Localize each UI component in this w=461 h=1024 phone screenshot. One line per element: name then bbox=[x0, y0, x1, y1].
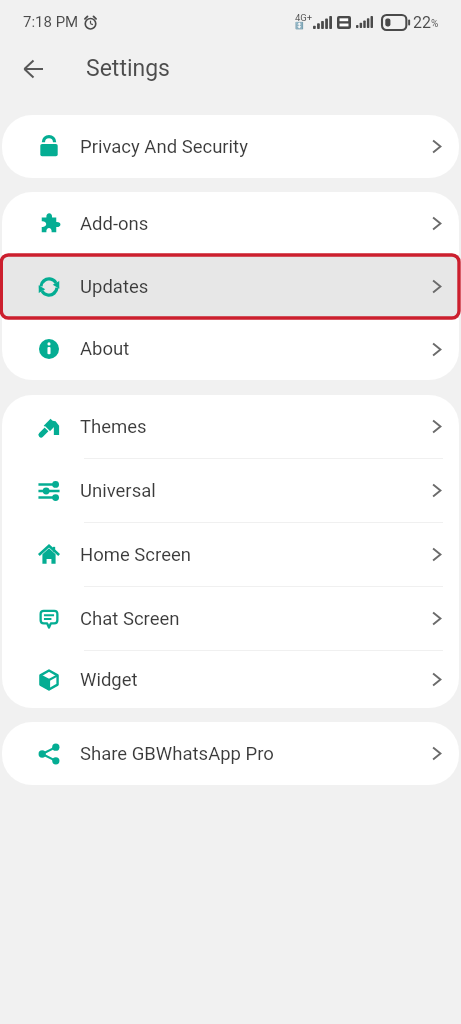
staticText: Privacy And Security bbox=[80, 136, 248, 158]
button[interactable]: Add-ons bbox=[2, 192, 459, 255]
button[interactable]: Widget bbox=[2, 651, 459, 708]
staticText: Universal bbox=[80, 480, 156, 502]
button[interactable]: Universal bbox=[2, 459, 459, 522]
button[interactable]: Chat Screen bbox=[2, 587, 459, 650]
button[interactable]: Privacy And Security bbox=[2, 115, 459, 178]
staticText: Share GBWhatsApp Pro bbox=[80, 743, 274, 765]
button[interactable]: Home Screen bbox=[2, 523, 459, 586]
staticText: 22 bbox=[413, 13, 431, 32]
button[interactable]: About bbox=[2, 318, 459, 380]
staticText: % bbox=[431, 18, 439, 30]
button[interactable]: Share GBWhatsApp Pro bbox=[2, 722, 459, 785]
staticText: Settings bbox=[86, 55, 170, 82]
staticText: ↕ bbox=[295, 22, 304, 30]
staticText: About bbox=[80, 338, 130, 360]
button[interactable]: Back bbox=[0, 42, 66, 95]
staticText: Widget bbox=[80, 669, 138, 691]
staticText: Home Screen bbox=[80, 544, 191, 566]
button[interactable]: Updates bbox=[2, 255, 459, 318]
staticText: Chat Screen bbox=[80, 608, 180, 630]
staticText: Themes bbox=[80, 416, 147, 438]
staticText: 4G+ bbox=[295, 12, 313, 23]
button[interactable]: Themes bbox=[2, 395, 459, 458]
staticText: 7:18 PM bbox=[23, 13, 79, 31]
staticText: Updates bbox=[80, 276, 149, 298]
staticText: Add-ons bbox=[80, 213, 149, 235]
